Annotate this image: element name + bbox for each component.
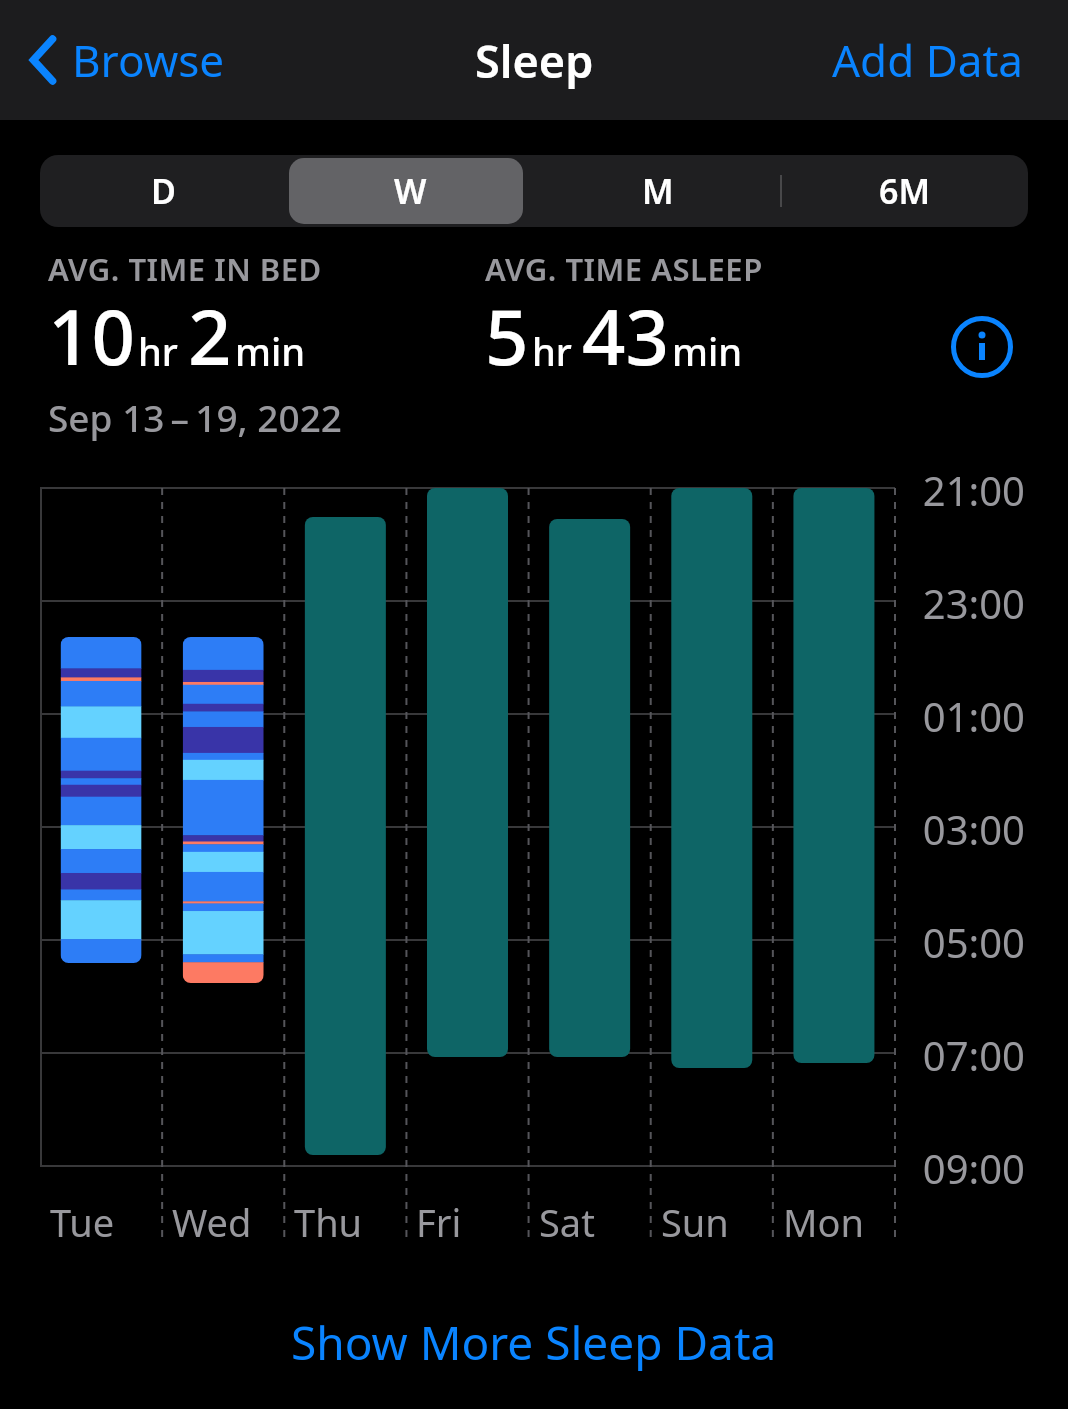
- staticText: Browse: [72, 30, 225, 90]
- button[interactable]: W: [287, 155, 534, 227]
- staticText: 6M: [879, 168, 931, 214]
- button[interactable]: [952, 317, 1012, 377]
- staticText: AVG. TIME ASLEEP: [485, 248, 763, 290]
- button[interactable]: Show More Sleep Data: [291, 1311, 777, 1374]
- staticText: 01:00: [922, 689, 1025, 739]
- button[interactable]: Add Data: [832, 30, 1024, 90]
- staticText: D: [151, 168, 176, 214]
- staticText: 43: [582, 284, 669, 388]
- staticText: 07:00: [922, 1028, 1025, 1078]
- staticText: Sleep: [475, 30, 594, 91]
- staticText: hr: [138, 325, 178, 377]
- staticText: Sep 13 – 19, 2022: [48, 392, 342, 442]
- staticText: 05:00: [922, 915, 1025, 965]
- staticText: Mon: [783, 1196, 864, 1248]
- staticText: Sun: [661, 1196, 729, 1248]
- staticText: Wed: [172, 1196, 252, 1248]
- staticText: 2: [188, 284, 232, 388]
- staticText: 21:00: [922, 463, 1025, 513]
- button[interactable]: M: [534, 155, 781, 227]
- staticText: AVG. TIME IN BED: [48, 248, 322, 290]
- staticText: Fri: [416, 1196, 462, 1248]
- staticText: W: [394, 168, 427, 214]
- staticText: 10: [48, 284, 135, 388]
- staticText: Show More Sleep Data: [291, 1311, 777, 1374]
- staticText: 5: [485, 284, 529, 388]
- staticText: hr: [532, 325, 572, 377]
- staticText: 09:00: [922, 1141, 1025, 1191]
- staticText: 03:00: [922, 802, 1025, 852]
- staticText: M: [642, 168, 674, 214]
- staticText: 23:00: [922, 576, 1025, 626]
- staticText: min: [235, 325, 306, 377]
- button[interactable]: D: [40, 155, 287, 227]
- button[interactable]: Browse: [28, 30, 225, 90]
- button[interactable]: 6M: [781, 155, 1028, 227]
- staticText: Sat: [539, 1196, 595, 1248]
- staticText: Thu: [294, 1196, 363, 1248]
- staticText: min: [672, 325, 743, 377]
- staticText: Tue: [50, 1196, 115, 1248]
